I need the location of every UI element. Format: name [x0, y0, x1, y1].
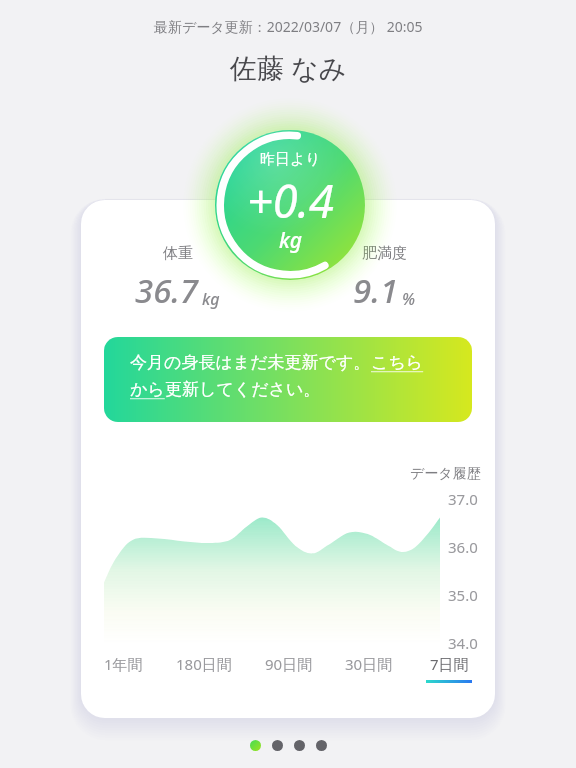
button[interactable]: 今月の身長はまだ未更新です。 — [104, 337, 472, 422]
staticText: 体重 — [163, 244, 193, 263]
staticText: 今月の身長はまだ未更新です。 — [130, 352, 371, 373]
staticText: 9.1 — [353, 268, 399, 313]
staticText: 7日間 — [430, 654, 469, 674]
staticText: から — [130, 379, 165, 400]
staticText: 昨日より — [260, 150, 321, 169]
staticText: 30日間 — [345, 654, 393, 674]
button[interactable]: Page 4 — [316, 740, 327, 751]
staticText: 最新データ更新：2022/03/07（月） 20:05 — [154, 17, 423, 36]
staticText: 37.0 — [448, 489, 478, 509]
button[interactable]: Page 3 — [294, 740, 305, 751]
button[interactable]: Page 2 — [272, 740, 283, 751]
staticText: データ履歴 — [410, 465, 481, 483]
staticText: +0.4 — [247, 170, 334, 231]
button[interactable]: 90日間 — [262, 652, 316, 685]
staticText: kg — [279, 226, 303, 255]
button[interactable]: 1年間 — [101, 652, 146, 685]
staticText: 1年間 — [104, 654, 143, 674]
staticText: % — [402, 288, 416, 310]
staticText: 佐藤 なみ — [230, 49, 347, 86]
button[interactable]: 180日間 — [173, 652, 235, 685]
staticText: 34.0 — [448, 633, 478, 653]
button[interactable]: 30日間 — [342, 652, 396, 685]
staticText: 90日間 — [265, 654, 313, 674]
staticText: 36.7 — [135, 268, 199, 313]
staticText: kg — [202, 288, 220, 310]
button[interactable]: Page 1 — [250, 740, 261, 751]
staticText: 肥満度 — [362, 244, 407, 263]
staticText: 36.0 — [448, 537, 478, 557]
staticText: 更新してください。 — [165, 379, 321, 400]
staticText: 35.0 — [448, 585, 478, 605]
staticText: 180日間 — [176, 654, 232, 674]
staticText: こちら — [371, 352, 424, 373]
button[interactable]: 7日間 — [423, 652, 475, 685]
